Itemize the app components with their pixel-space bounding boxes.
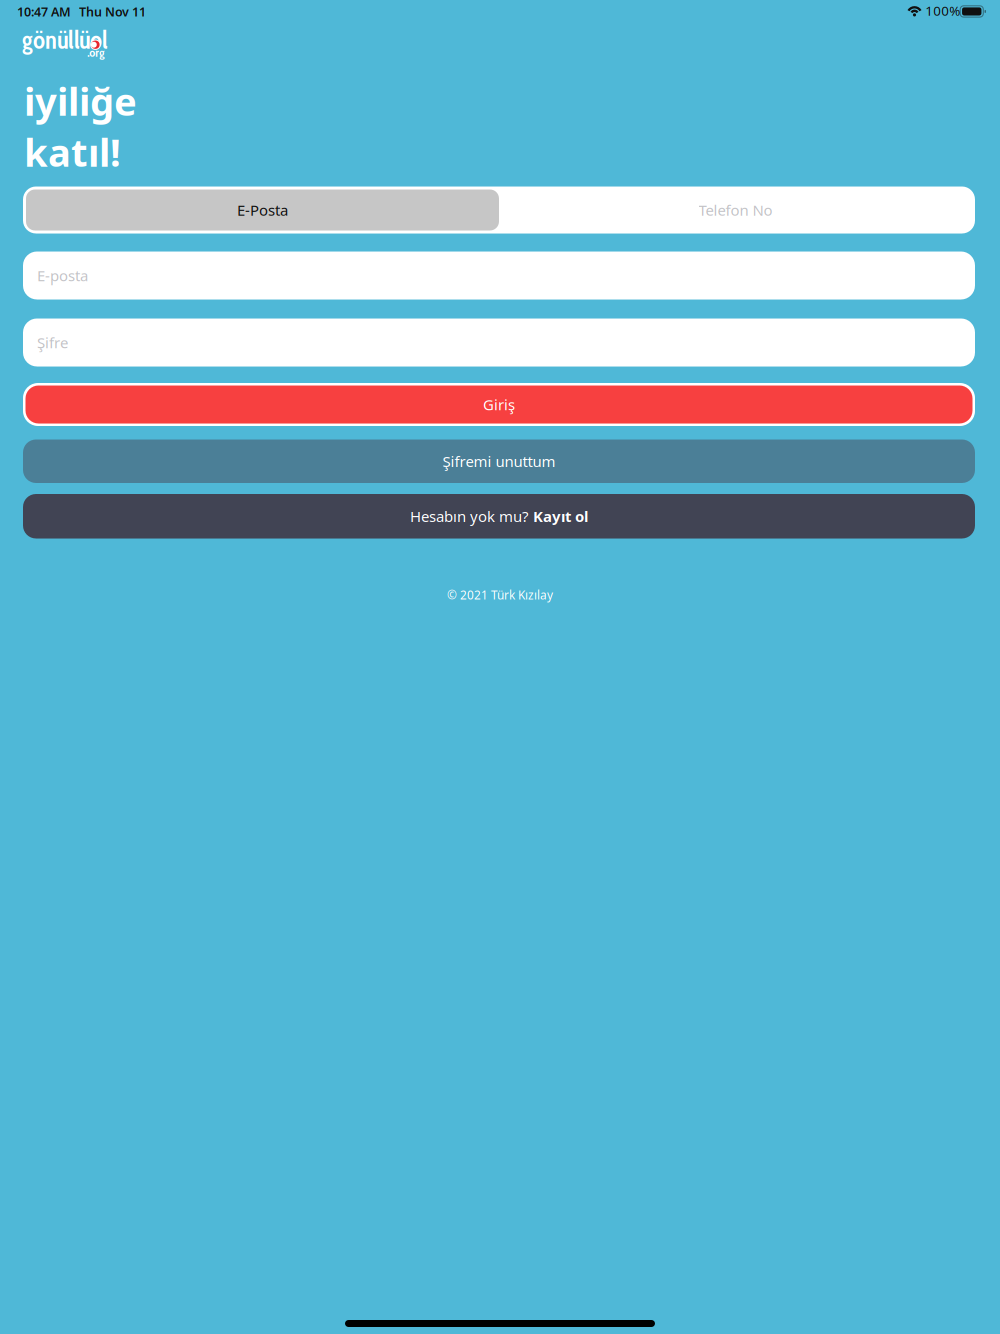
button[interactable]: Telefon No <box>499 189 972 230</box>
staticText: Telefon No <box>698 200 772 220</box>
staticText: gönüllüol <box>22 25 108 55</box>
staticText: Thu Nov 11 <box>79 3 146 20</box>
staticText: Hesabın yok mu? <box>410 506 528 526</box>
staticText: Şifre <box>37 332 68 353</box>
staticText: .org <box>87 45 104 60</box>
staticText: 10:47 AM <box>17 3 71 20</box>
staticText: katıl! <box>24 126 121 178</box>
staticText: Şifremi unuttum <box>442 451 555 471</box>
staticText: E-Posta <box>237 200 288 220</box>
button[interactable]: Şifremi unuttum <box>23 439 975 483</box>
staticText: E-posta <box>37 265 88 286</box>
staticText: Kayıt ol <box>533 506 588 526</box>
button[interactable]: Hesabın yok mu? <box>23 494 975 538</box>
staticText: iyiliğe <box>24 75 137 127</box>
button[interactable]: Giriş <box>23 383 975 426</box>
button[interactable]: E-Posta <box>26 189 499 230</box>
staticText: © 2021 Türk Kızılay <box>447 587 553 603</box>
staticText: 100% <box>925 1 960 20</box>
staticText: Giriş <box>483 394 515 415</box>
